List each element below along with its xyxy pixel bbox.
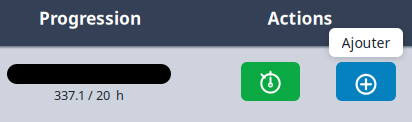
button[interactable]: Démarrer le chronomètre xyxy=(241,62,300,101)
staticText: Ajouter xyxy=(341,33,390,52)
staticText: 337.1 / 20 h xyxy=(54,86,124,104)
staticText: Progression xyxy=(39,6,141,30)
button[interactable]: Ajouter xyxy=(336,62,396,101)
staticText: Actions xyxy=(267,6,332,30)
